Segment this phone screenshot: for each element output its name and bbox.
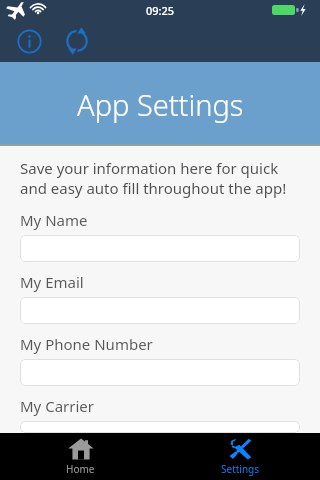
staticText: My Carrier bbox=[20, 396, 94, 416]
staticText: My Email bbox=[20, 272, 84, 292]
staticText: My Phone Number bbox=[20, 334, 153, 354]
button[interactable]: Home bbox=[0, 433, 160, 480]
button[interactable]: Input field bbox=[20, 421, 300, 433]
button[interactable]: Input field bbox=[20, 235, 300, 262]
button[interactable]: Settings bbox=[160, 433, 320, 480]
button[interactable]: Input field bbox=[20, 359, 300, 386]
staticText: Home bbox=[66, 462, 95, 476]
staticText: Settings bbox=[221, 462, 260, 476]
staticText: 09:25 bbox=[146, 3, 175, 18]
staticText: App Settings bbox=[77, 85, 244, 124]
button[interactable]: Info bbox=[13, 25, 45, 57]
button[interactable]: Refresh bbox=[60, 24, 94, 58]
staticText: Save your information here for quick and… bbox=[20, 158, 300, 198]
button[interactable]: Input field bbox=[20, 297, 300, 324]
staticText: My Name bbox=[20, 210, 88, 230]
